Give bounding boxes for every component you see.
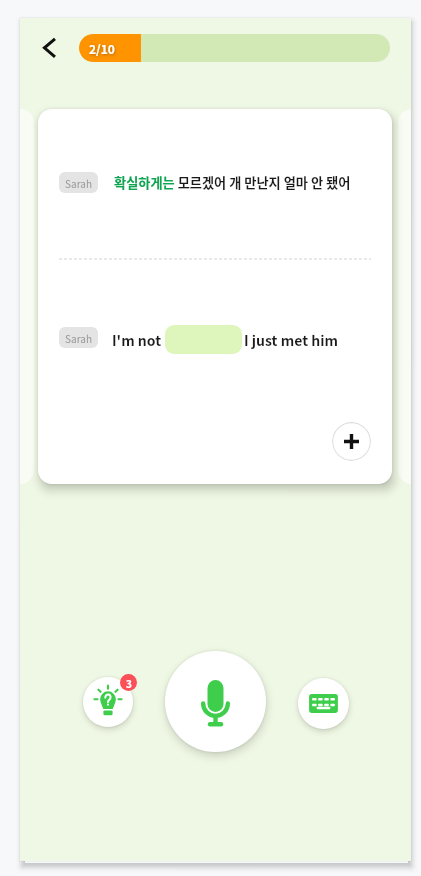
staticText: 2/10 [89, 40, 115, 57]
staticText: Sarah [65, 331, 92, 345]
button[interactable]: Back [37, 32, 68, 63]
staticText: I just met him [244, 330, 338, 350]
staticText: 3 [126, 676, 132, 690]
staticText: I'm not [112, 330, 162, 350]
staticText: 확실하게는 모르겠어 개 만난지 얼마 안 됐어 [114, 173, 351, 192]
button[interactable]: Record [165, 651, 266, 752]
button[interactable]: Sarah [38, 109, 392, 484]
button[interactable]: Add [332, 422, 371, 461]
button[interactable]: Keyboard [298, 678, 349, 729]
button[interactable] [165, 325, 242, 354]
staticText: Sarah [65, 176, 92, 190]
button[interactable]: Hint [83, 677, 133, 727]
